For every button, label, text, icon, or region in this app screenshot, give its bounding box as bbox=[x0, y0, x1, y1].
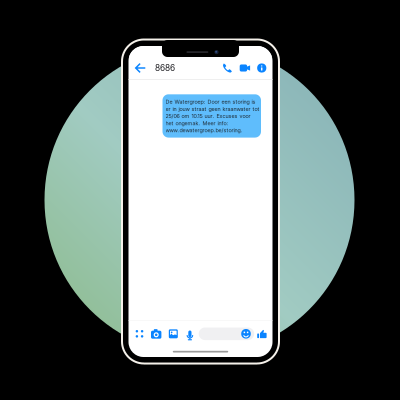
button[interactable]: Photos bbox=[165, 327, 182, 341]
staticText: De Watergroep: Door een storing is er in… bbox=[165, 99, 259, 134]
button[interactable]: Voice message bbox=[182, 327, 198, 341]
button[interactable]: Call bbox=[222, 58, 233, 78]
button[interactable]: Video call bbox=[239, 58, 250, 78]
button[interactable]: Send like bbox=[254, 327, 270, 341]
staticText: 8686 bbox=[155, 63, 175, 73]
button[interactable]: Camera bbox=[148, 327, 165, 341]
button[interactable]: Conversation details bbox=[257, 58, 266, 78]
button[interactable]: Back bbox=[133, 58, 147, 78]
button[interactable]: More apps bbox=[131, 327, 148, 341]
button[interactable] bbox=[199, 327, 254, 340]
button[interactable]: 8686 bbox=[155, 58, 175, 78]
